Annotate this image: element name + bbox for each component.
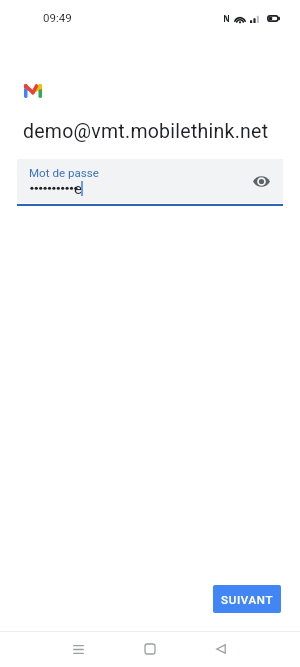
button[interactable]: SUIVANT	[213, 585, 281, 613]
button[interactable]: Accueil	[130, 631, 170, 667]
button[interactable]: Afficher le mot de passe	[249, 169, 273, 193]
button[interactable]: Aperçu	[58, 631, 98, 667]
staticText: Mot de passe	[29, 166, 99, 180]
staticText: SUIVANT	[221, 593, 274, 606]
staticText: 09:49	[43, 11, 72, 24]
button[interactable]: Mot de passe	[17, 159, 283, 203]
staticText: demo@vmt.mobilethink.net	[23, 120, 269, 143]
button[interactable]: Retour	[201, 631, 241, 667]
staticText: e	[74, 180, 82, 198]
